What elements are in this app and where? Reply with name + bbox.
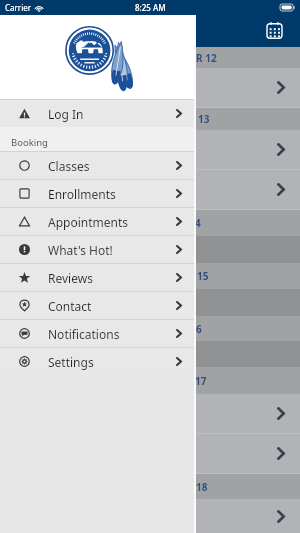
button[interactable]: Appointments [0,207,194,235]
staticText: Enrollments [48,186,116,202]
staticText: What's Hot! [48,242,113,258]
staticText: Contact [48,298,92,314]
staticText: R 12 [196,51,217,65]
button[interactable] [0,68,300,108]
button[interactable]: Enrollments [0,179,194,207]
staticText: 8:25 AM [135,2,166,13]
staticText: Appointments [48,214,129,230]
button[interactable] [0,434,300,474]
staticText: 13 [198,112,210,126]
button[interactable]: Contact [0,291,194,319]
button[interactable] [0,394,300,434]
staticText: 6 [196,322,202,336]
staticText: 18 [196,480,208,494]
button[interactable]: Notifications [0,319,194,347]
button[interactable]: What's Hot! [0,235,194,263]
staticText: Classes [48,158,90,174]
button[interactable]: Calendar [262,18,286,42]
button[interactable] [0,130,300,170]
staticText: Booking [11,136,194,149]
staticText: Log In [48,106,84,122]
staticText: Notifications [48,326,120,342]
staticText: 17 [195,374,207,388]
button[interactable]: Classes [0,151,194,179]
button[interactable] [0,499,300,533]
staticText: Settings [48,354,94,370]
button[interactable]: Log In [0,99,194,127]
button[interactable] [0,170,300,210]
staticText: Reviews [48,270,93,286]
staticText: 4 [195,216,201,230]
button[interactable]: Settings [0,347,194,375]
button[interactable]: Reviews [0,263,194,291]
staticText: 15 [197,269,209,283]
staticText: Carrier [5,2,32,13]
